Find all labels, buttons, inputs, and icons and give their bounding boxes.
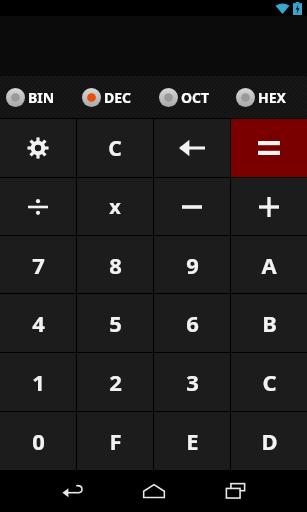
staticText: 8 [109, 250, 122, 280]
staticText: 3 [186, 367, 199, 397]
staticText: 6 [186, 308, 199, 338]
button[interactable]: Plus [231, 178, 307, 235]
button[interactable]: OCT [153, 76, 230, 119]
staticText: 7 [32, 250, 45, 280]
staticText: x [109, 193, 121, 220]
staticText: DEC [104, 88, 132, 107]
button[interactable]: 7 [0, 236, 76, 293]
staticText: A [261, 250, 277, 280]
button[interactable]: B [231, 294, 307, 352]
button[interactable]: Back [52, 471, 92, 511]
button[interactable]: Recent apps [215, 471, 255, 511]
button[interactable]: 2 [77, 353, 153, 411]
staticText: C [108, 134, 122, 163]
button[interactable]: 8 [77, 236, 153, 293]
button[interactable]: 0 [0, 412, 76, 470]
staticText: BIN [28, 88, 55, 107]
button[interactable]: A [231, 236, 307, 293]
button[interactable]: Backspace [154, 119, 230, 177]
staticText: C [262, 367, 277, 397]
staticText: 2 [109, 367, 122, 397]
staticText: HEX [258, 88, 286, 107]
button[interactable]: 6 [154, 294, 230, 352]
button[interactable]: C [77, 119, 153, 177]
staticText: 4 [32, 308, 45, 338]
staticText: 9 [186, 250, 199, 280]
button[interactable]: 1 [0, 353, 76, 411]
button[interactable]: C [231, 353, 307, 411]
staticText: F [109, 426, 122, 456]
button[interactable]: HEX [230, 76, 307, 119]
button[interactable]: 5 [77, 294, 153, 352]
button[interactable]: x [77, 178, 153, 235]
button[interactable]: Equals [231, 119, 307, 177]
staticText: OCT [181, 88, 210, 107]
staticText: 0 [32, 426, 45, 456]
staticText: 5 [109, 308, 122, 338]
staticText: B [262, 308, 277, 338]
button[interactable]: 3 [154, 353, 230, 411]
button[interactable]: DEC [76, 76, 153, 119]
button[interactable]: F [77, 412, 153, 470]
button[interactable]: E [154, 412, 230, 470]
staticText: 1 [32, 367, 45, 397]
button[interactable]: Home [134, 471, 174, 511]
button[interactable]: Minus [154, 178, 230, 235]
button[interactable]: BIN [0, 76, 76, 119]
button[interactable]: 4 [0, 294, 76, 352]
button[interactable]: D [231, 412, 307, 470]
button[interactable]: Divide [0, 178, 76, 235]
staticText: D [261, 426, 278, 456]
staticText: E [186, 426, 199, 456]
button[interactable]: Settings [0, 119, 76, 177]
button[interactable]: 9 [154, 236, 230, 293]
